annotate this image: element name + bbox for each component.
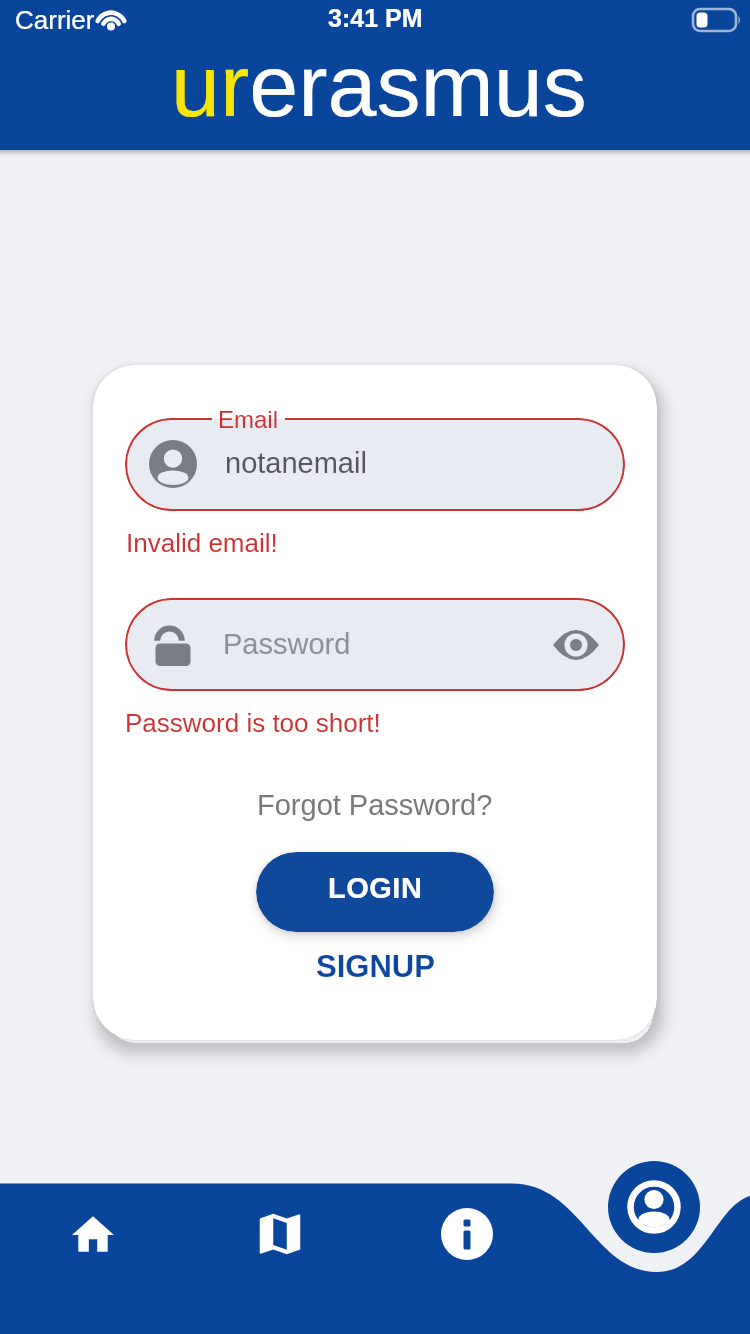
button[interactable] <box>437 1204 497 1264</box>
staticText: Invalid email! <box>126 528 278 557</box>
staticText: Email <box>218 406 279 433</box>
staticText: LOGIN <box>328 872 423 904</box>
button[interactable]: SIGNUP <box>275 946 475 986</box>
button[interactable] <box>125 418 625 511</box>
button[interactable] <box>63 1204 123 1264</box>
button[interactable] <box>125 598 625 691</box>
button[interactable]: Forgot Password? <box>225 787 525 823</box>
staticText: Carrier <box>15 5 95 34</box>
button[interactable] <box>250 1204 310 1264</box>
staticText: 3:41 PM <box>328 4 423 32</box>
button[interactable] <box>608 1161 700 1253</box>
staticText: Password is too short! <box>125 708 381 737</box>
staticText: urerasmus <box>171 36 587 134</box>
staticText: Password <box>223 628 351 660</box>
staticText: notanemail <box>225 447 367 479</box>
staticText: Forgot Password? <box>257 789 493 821</box>
button[interactable]: LOGIN <box>256 852 494 932</box>
staticText: SIGNUP <box>316 949 435 984</box>
